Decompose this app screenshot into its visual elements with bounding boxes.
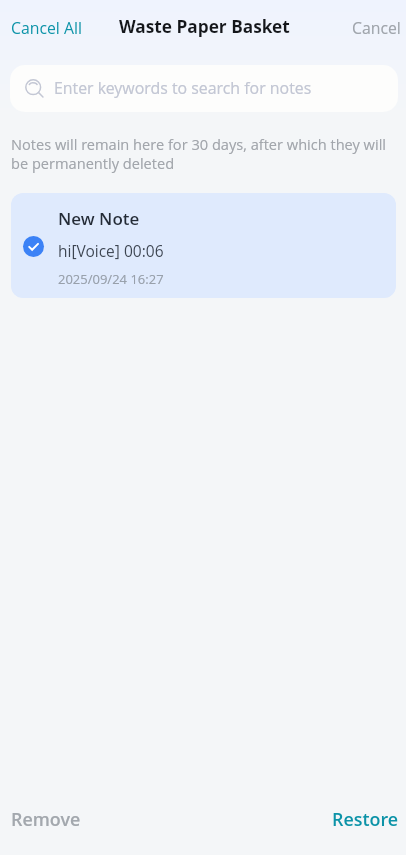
staticText: 2025/09/24 16:27 xyxy=(58,270,164,288)
staticText: Restore xyxy=(332,807,399,831)
staticText: hi[Voice] 00:06 xyxy=(58,240,164,261)
other: Selected xyxy=(23,236,44,257)
button[interactable]: Cancel All xyxy=(0,11,93,45)
button[interactable]: Cancel xyxy=(341,11,406,45)
button[interactable]: Enter keywords to search for notes xyxy=(10,65,398,112)
button[interactable]: Remove xyxy=(0,800,92,838)
staticText: Enter keywords to search for notes xyxy=(54,77,312,99)
staticText: Notes will remain here for 30 days, afte… xyxy=(11,134,391,173)
button[interactable]: Selected xyxy=(11,193,396,298)
staticText: New Note xyxy=(58,207,140,230)
staticText: Remove xyxy=(11,807,81,831)
staticText: Waste Paper Basket xyxy=(119,15,290,38)
staticText: Cancel All xyxy=(11,17,82,39)
button[interactable]: Restore xyxy=(325,800,406,838)
staticText: Cancel xyxy=(352,17,401,39)
